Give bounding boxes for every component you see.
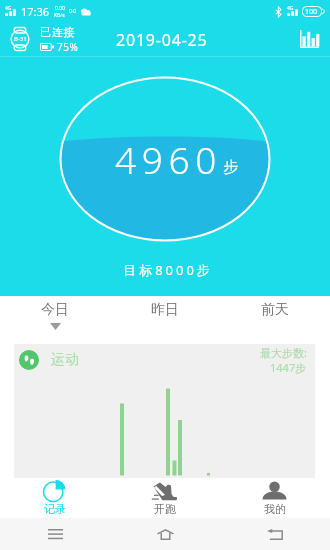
staticText: 开跑 [154,502,176,516]
staticText: 1447步 [270,360,307,375]
button[interactable]: 记录 [0,478,110,518]
staticText: 0.00 [55,5,65,12]
button[interactable]: B-31 [5,24,79,54]
staticText: 前天 [261,301,289,319]
staticText: 已连接 [40,25,76,39]
button[interactable]: 今日 [0,296,110,342]
button[interactable]: Back [263,522,287,546]
button[interactable]: 我的 [220,478,330,518]
staticText: 步 [223,158,238,177]
staticText: 75% [57,40,79,54]
button[interactable]: Menu [43,522,67,546]
staticText: 我的 [264,502,286,516]
staticText: 4960 [115,134,222,184]
staticText: 目标8000步 [3,261,330,279]
button[interactable]: 开跑 [110,478,220,518]
button[interactable]: 前天 [220,296,330,342]
staticText: 今日 [41,301,69,319]
staticText: 记录 [44,502,66,516]
staticText: B-31 [14,35,27,43]
staticText: 运动 [51,351,79,369]
staticText: 17:36 [21,4,50,19]
button[interactable]: Statistics [297,27,321,51]
staticText: 2019-04-25 [116,29,208,51]
button[interactable]: Home [153,522,177,546]
staticText: 4G [287,5,294,12]
staticText: 昨日 [151,301,179,319]
button[interactable]: 运动 [14,344,315,478]
staticText: 100 [305,7,318,17]
button[interactable]: 昨日 [110,296,220,342]
staticText: KB/s [54,12,65,19]
staticText: 最大步数: [260,345,307,360]
staticText: 4G [5,5,12,12]
staticText: 0·0 [69,8,77,15]
